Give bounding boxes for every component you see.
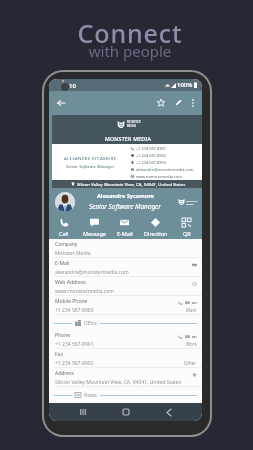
staticText: +1 234 567-8903 [55,307,94,314]
staticText: Alexandre Sycamore [97,192,154,200]
staticText: ALEXANDRE SYCAMORE [64,155,117,161]
staticText: MONSTER [127,120,141,124]
button[interactable]: E-Mail [49,258,202,277]
button[interactable]: E-Mail [109,215,140,239]
staticText: Work [186,341,197,346]
button[interactable]: Favorite [153,94,169,112]
button[interactable]: More options [186,94,200,112]
staticText: alexandre@monstermedia.com [55,269,129,276]
staticText: +1 234 567-8902 [55,360,94,367]
button[interactable]: Web Address [49,277,202,296]
staticText: Company [55,241,78,248]
button[interactable]: Home [119,405,133,419]
button[interactable]: Message [79,215,109,239]
staticText: Phone [55,332,71,339]
staticText: +1 234 567-8901 [55,341,94,348]
staticText: Office [84,320,97,326]
staticText: E-Mail [55,260,70,267]
staticText: Fax [55,351,64,358]
staticText: with people [30,41,230,61]
staticText: Mobile Phone [55,298,88,305]
button[interactable]: Edit [169,94,186,112]
staticText: +1 234 567-8901 [136,146,166,151]
staticText: MEDIA [127,124,137,128]
staticText: +1 234 567-8903 [136,160,166,165]
staticText: www.monstermedia.com [55,288,114,295]
staticText: www.monstermedia.com [136,174,182,179]
button[interactable]: Fax [49,349,202,368]
button[interactable]: Recents [76,405,90,419]
button[interactable]: Mobile Phone [49,296,202,315]
button[interactable]: Back [162,405,176,419]
staticText: alexandre@monstermedia.com [136,167,194,172]
staticText: Silicon Valley Mountain View, CA, 94041,… [55,379,182,386]
staticText: Notes [84,392,97,398]
button[interactable]: QR [171,215,202,239]
staticText: E-Mail [117,230,133,237]
staticText: MEDIA [186,202,194,205]
button[interactable]: Direction [140,215,171,239]
staticText: Silicon Valley Mountain View, CA, 94041,… [77,181,186,187]
staticText: Call [59,230,69,237]
staticText: Main [186,307,197,312]
staticText: Address [55,370,74,377]
staticText: MONSTER MEDIA [105,135,152,142]
button[interactable]: Address [49,368,202,387]
staticText: QR [183,230,191,237]
button[interactable]: Phone [49,330,202,349]
staticText: Senior Software Manager [89,202,161,211]
staticText: Monster Media [55,250,91,257]
staticText: +1 234 567-8902 [136,153,166,158]
staticText: Message [83,230,106,237]
staticText: Direction [144,230,168,237]
staticText: MONSTER [186,199,198,202]
button[interactable]: Company [49,239,202,258]
staticText: Web Address [55,279,86,286]
button[interactable]: Call [49,215,79,239]
staticText: Other [184,360,197,365]
staticText: Senior Software Manager [66,163,115,169]
staticText: Connect [30,16,230,50]
button[interactable]: Back [54,96,68,110]
staticText: 10 [69,82,76,90]
staticText: 100% [177,81,193,89]
